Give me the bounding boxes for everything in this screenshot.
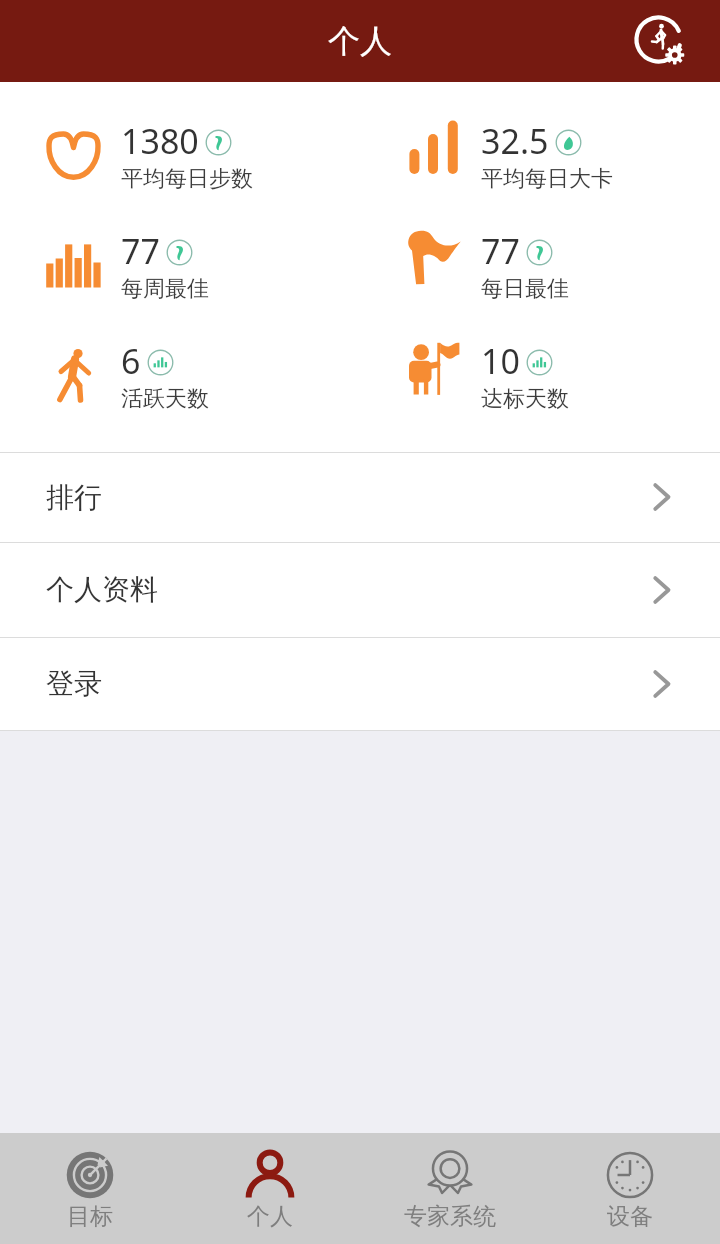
staticText: 专家系统 — [404, 1202, 496, 1231]
staticText: 1380 — [121, 118, 199, 164]
button[interactable]: 排行 — [0, 452, 720, 542]
staticText: 目标 — [67, 1202, 113, 1231]
button[interactable]: 1380 — [0, 113, 360, 195]
button[interactable]: 10 — [360, 333, 720, 415]
staticText: 每日最佳 — [481, 275, 569, 303]
button[interactable]: 目标 — [0, 1133, 180, 1244]
button[interactable]: Activity settings — [634, 15, 686, 67]
staticText: 排行 — [46, 480, 102, 515]
staticText: 达标天数 — [481, 385, 569, 413]
button[interactable]: 登录 — [0, 637, 720, 730]
staticText: 10 — [481, 338, 520, 384]
staticText: 个人 — [247, 1202, 293, 1231]
staticText: 个人资料 — [46, 572, 158, 607]
button[interactable]: 个人资料 — [0, 542, 720, 637]
staticText: 活跃天数 — [121, 385, 209, 413]
staticText: 平均每日大卡 — [481, 165, 613, 193]
staticText: 设备 — [607, 1202, 653, 1231]
staticText: 平均每日步数 — [121, 165, 253, 193]
staticText: 32.5 — [481, 118, 549, 164]
button[interactable]: 专家系统 — [360, 1133, 540, 1244]
button[interactable]: 设备 — [540, 1133, 720, 1244]
button[interactable]: 32.5 — [360, 113, 720, 195]
staticText: 每周最佳 — [121, 275, 209, 303]
button[interactable]: 77 — [360, 223, 720, 305]
button[interactable]: 个人 — [180, 1133, 360, 1244]
staticText: 6 — [121, 338, 141, 384]
button[interactable]: 6 — [0, 333, 360, 415]
staticText: 77 — [481, 228, 520, 274]
staticText: 登录 — [46, 666, 102, 701]
button[interactable]: 77 — [0, 223, 360, 305]
staticText: 77 — [121, 228, 160, 274]
staticText: 个人 — [328, 21, 392, 61]
